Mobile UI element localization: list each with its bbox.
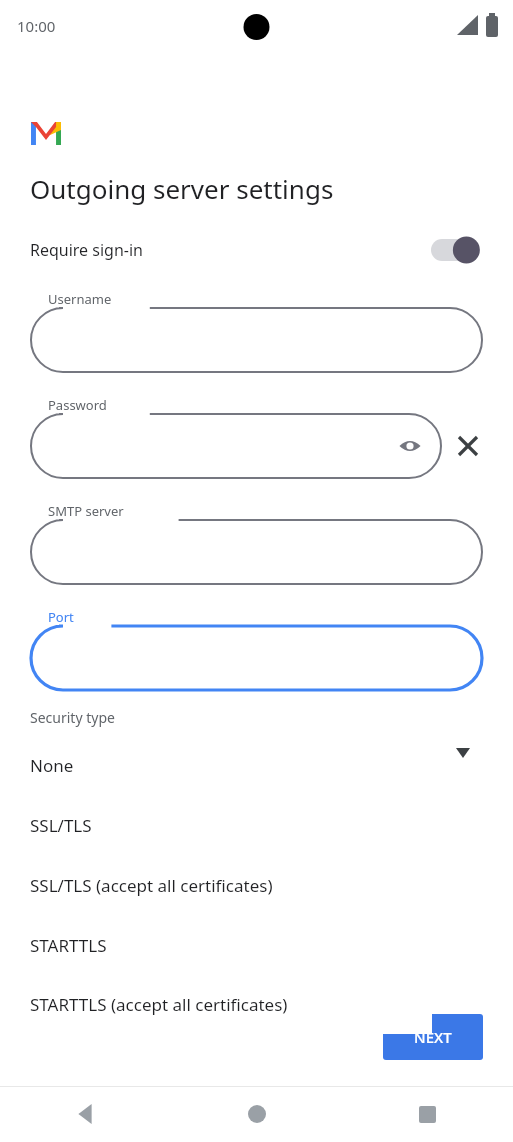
button[interactable]: SSL/TLS (accept all certificates) (19, 855, 432, 915)
staticText: SSL/TLS (accept all certificates) (30, 874, 273, 897)
staticText: 10:00 (17, 16, 56, 36)
button[interactable]: STARTTLS (19, 915, 432, 975)
button[interactable]: SMTP server (31, 502, 482, 584)
button[interactable]: Recent apps (342, 1086, 513, 1142)
button[interactable]: Port (31, 608, 482, 690)
button[interactable]: STARTTLS (accept all certificates) (19, 975, 432, 1034)
button[interactable]: Require sign-in toggle (431, 235, 483, 265)
staticText: Password (48, 396, 107, 414)
button[interactable]: NEXT (383, 1014, 483, 1060)
button[interactable]: Require sign-in (0, 228, 513, 272)
button[interactable]: Show password (395, 431, 425, 461)
staticText: Require sign-in (30, 239, 143, 261)
button[interactable]: Username (31, 290, 482, 372)
staticText: STARTTLS (accept all certificates) (30, 993, 288, 1016)
button[interactable]: Open security type menu (446, 738, 480, 772)
staticText: None (30, 754, 74, 777)
button[interactable]: SSL/TLS (19, 795, 432, 855)
button[interactable]: Back (0, 1086, 171, 1142)
staticText: SMTP server (48, 502, 124, 520)
staticText: Port (48, 608, 74, 626)
staticText: STARTTLS (30, 934, 107, 957)
button[interactable]: Clear (450, 428, 486, 464)
button[interactable]: Home (171, 1086, 342, 1142)
staticText: NEXT (414, 1027, 452, 1047)
button[interactable]: Password (31, 396, 441, 478)
button[interactable]: None (19, 735, 432, 795)
staticText: Security type (30, 708, 115, 727)
staticText: Outgoing server settings (30, 171, 334, 206)
staticText: SSL/TLS (30, 814, 92, 837)
staticText: Username (48, 290, 112, 308)
